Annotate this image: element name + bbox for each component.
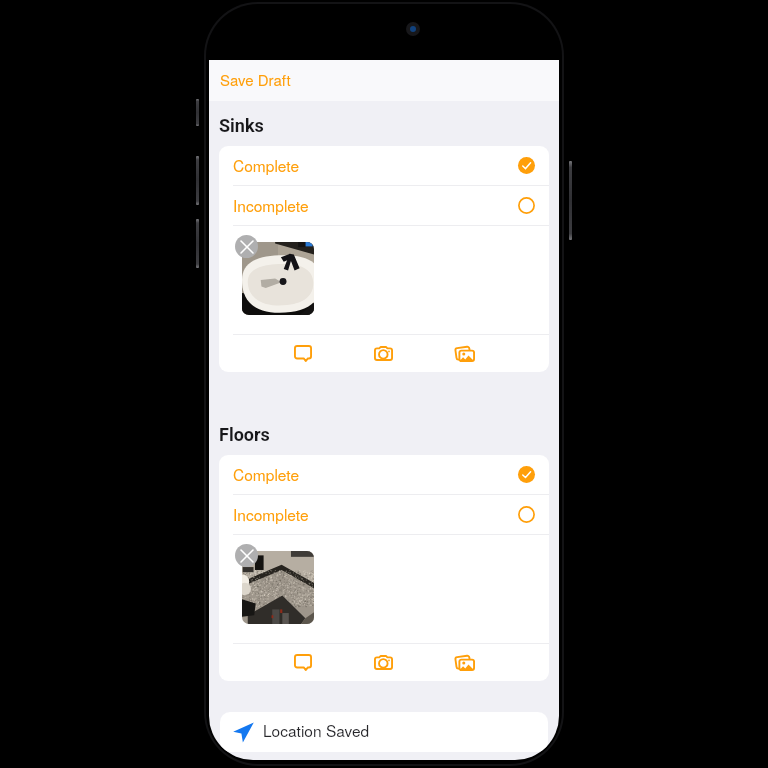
- button[interactable]: Take photo: [367, 646, 399, 678]
- button[interactable]: Photo: [242, 551, 314, 624]
- button[interactable]: Photo: [242, 242, 314, 315]
- button[interactable]: Remove photo: [235, 235, 258, 258]
- staticText: Location Saved: [263, 719, 370, 741]
- button[interactable]: Complete: [219, 146, 549, 185]
- staticText: Incomplete: [233, 503, 309, 525]
- staticText: Sinks: [219, 115, 264, 136]
- staticText: Floors: [219, 424, 270, 445]
- button[interactable]: Add comment: [287, 646, 319, 678]
- staticText: Complete: [233, 154, 300, 176]
- staticText: Save Draft: [220, 69, 291, 90]
- button[interactable]: Location Saved: [220, 712, 548, 752]
- button[interactable]: Photo library: [449, 646, 481, 678]
- staticText: Complete: [233, 463, 300, 485]
- staticText: Incomplete: [233, 194, 309, 216]
- button[interactable]: Complete: [219, 455, 549, 494]
- button[interactable]: Incomplete: [219, 186, 549, 225]
- button[interactable]: Take photo: [367, 337, 399, 369]
- button[interactable]: Add comment: [287, 337, 319, 369]
- button[interactable]: Photo library: [449, 337, 481, 369]
- button[interactable]: Save Draft: [214, 62, 297, 97]
- button[interactable]: Incomplete: [219, 495, 549, 534]
- button[interactable]: Remove photo: [235, 544, 258, 567]
